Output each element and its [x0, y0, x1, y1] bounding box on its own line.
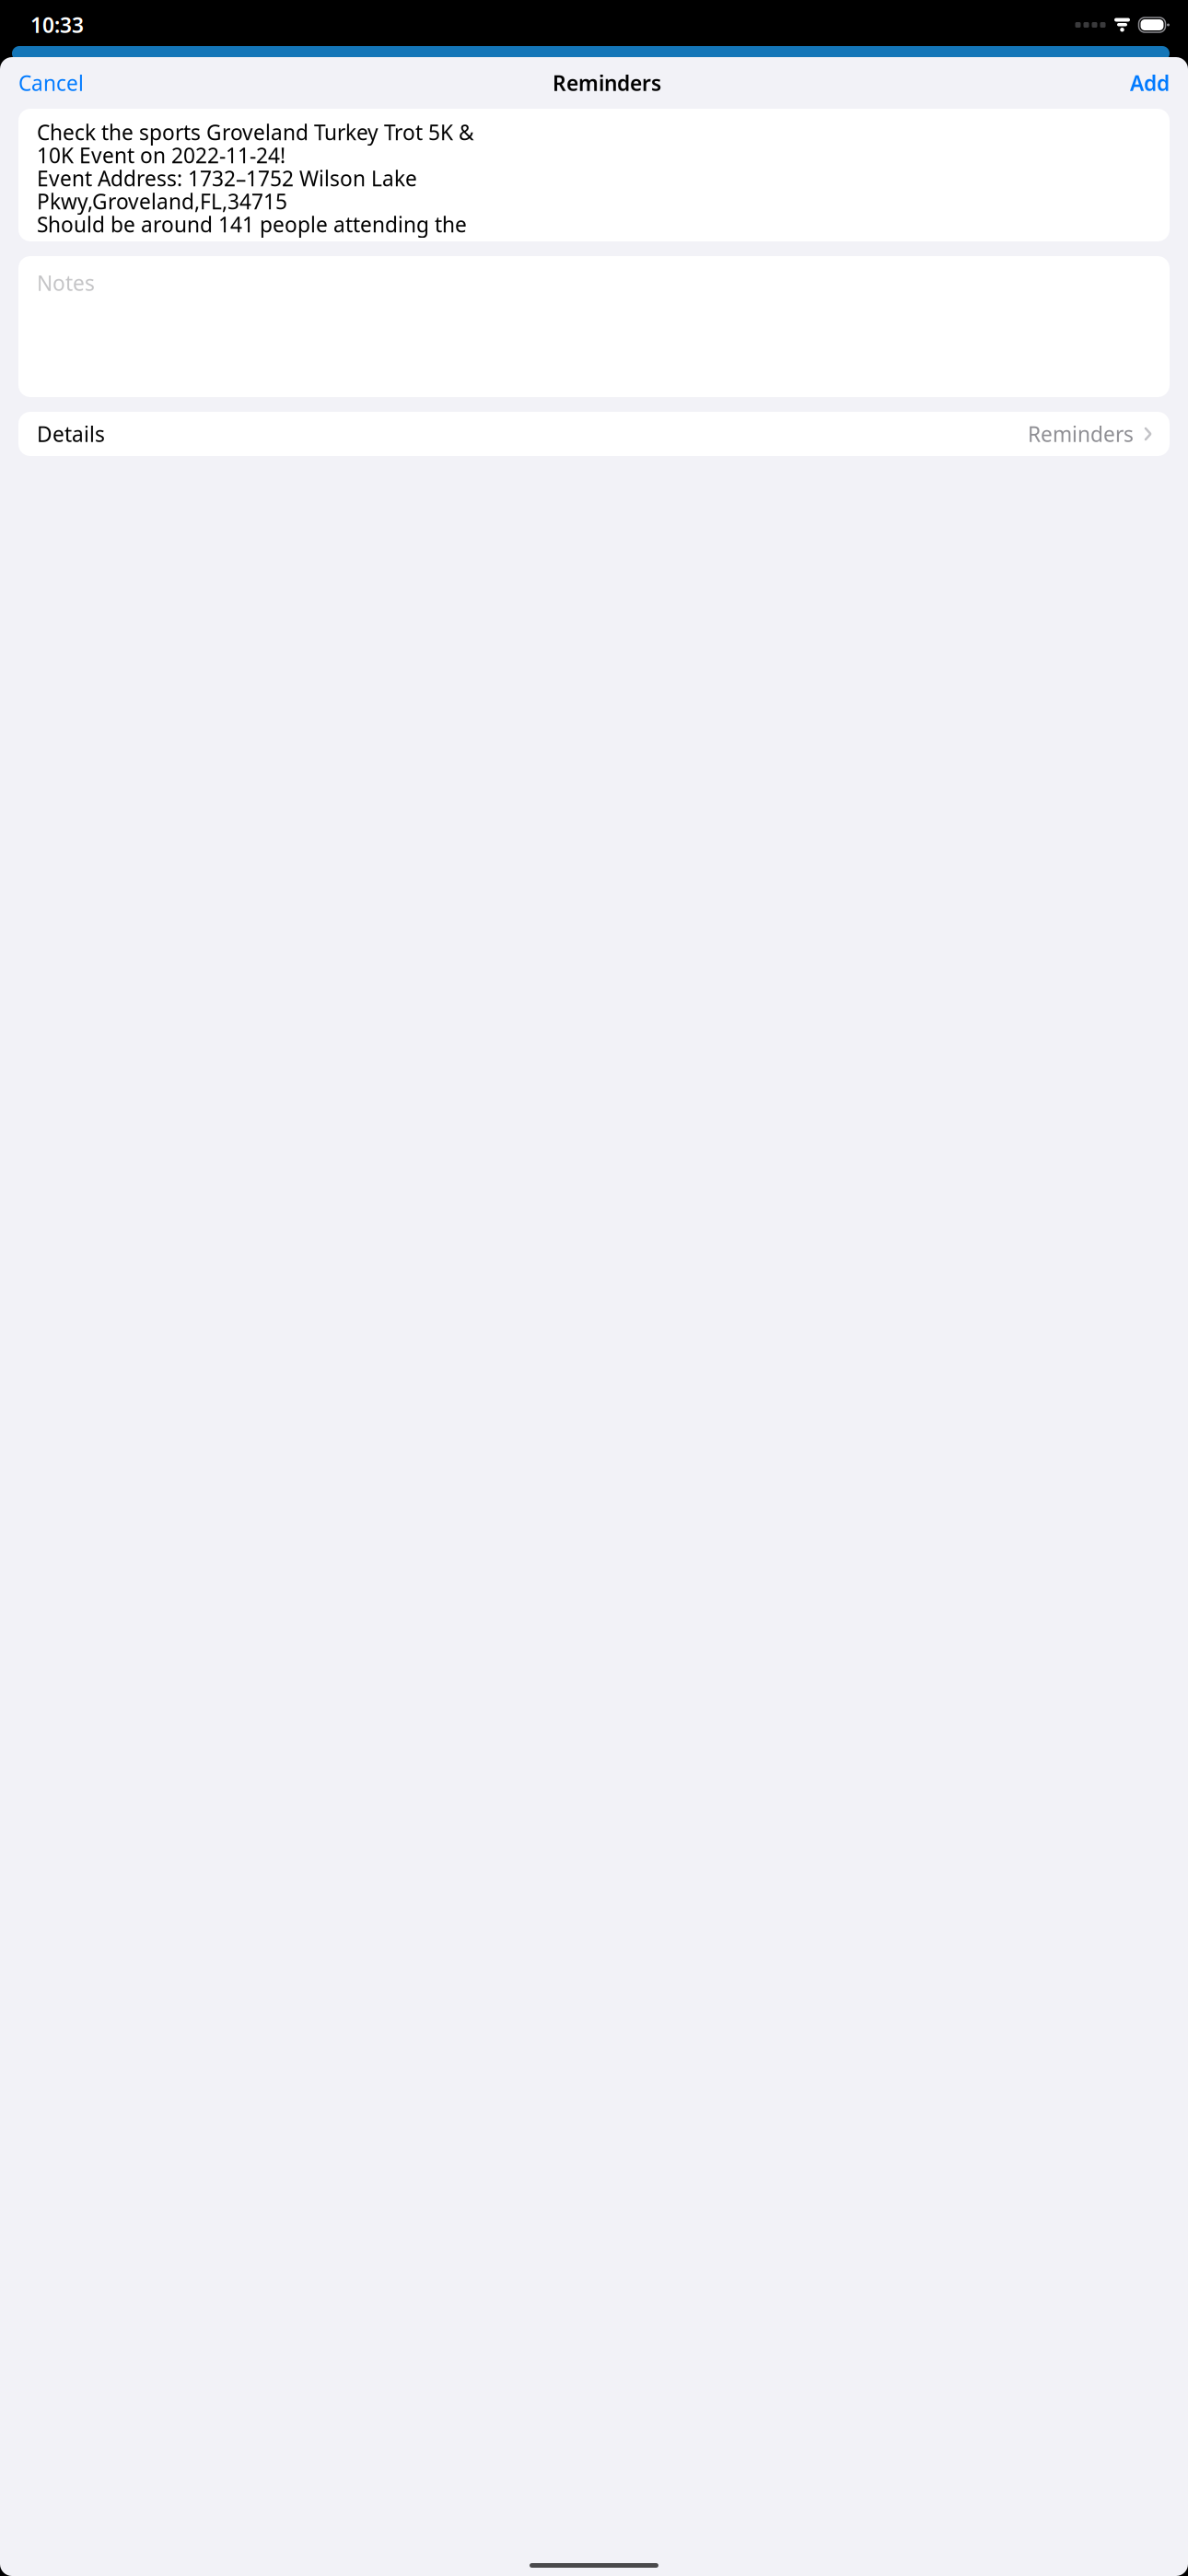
button[interactable]: Details [18, 412, 1170, 456]
staticText: Add [1130, 69, 1170, 97]
button[interactable]: Cancel [0, 58, 102, 108]
button[interactable]: Add [1112, 58, 1188, 108]
staticText: Reminders [553, 69, 661, 97]
staticText: 10:33 [30, 11, 84, 39]
staticText: Should be around 141 people attending th… [37, 210, 467, 238]
staticText: Details [37, 420, 105, 448]
staticText: Pkwy,Groveland,FL,34715 [37, 187, 287, 215]
staticText: Reminders [1028, 420, 1134, 448]
staticText: Notes [37, 269, 95, 297]
staticText: event [37, 233, 91, 261]
staticText: Event Address: 1732–1752 Wilson Lake [37, 164, 417, 192]
staticText: 10K Event on 2022-11-24! [37, 141, 285, 169]
staticText: Cancel [18, 69, 84, 97]
staticText: Check the sports Groveland Turkey Trot 5… [37, 118, 474, 146]
